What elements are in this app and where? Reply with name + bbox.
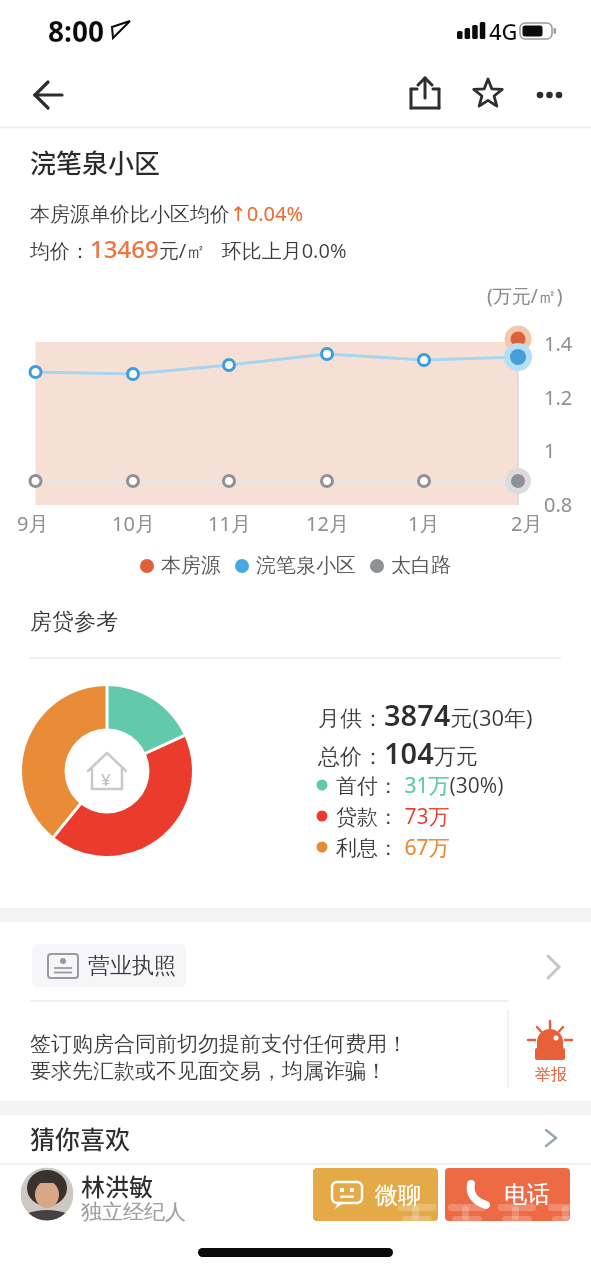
staticText: 猜你喜欢 bbox=[30, 1120, 131, 1156]
staticText: 利息： 67万 bbox=[336, 833, 450, 862]
staticText: 浣笔泉小区 bbox=[256, 553, 356, 578]
staticText: 9月 bbox=[17, 510, 49, 537]
staticText: 1月 bbox=[408, 510, 440, 537]
staticText: ¥ bbox=[101, 768, 111, 791]
staticText: 独立经纪人 bbox=[81, 1199, 186, 1225]
staticText: 8:00 bbox=[48, 12, 104, 50]
staticText: 太白路 bbox=[391, 553, 451, 578]
staticText: (万元/㎡) bbox=[487, 283, 563, 309]
staticText: 举报 bbox=[535, 1065, 567, 1085]
staticText: 要求先汇款或不见面交易，均属诈骗！ bbox=[30, 1058, 387, 1084]
staticText: 房贷参考 bbox=[30, 608, 118, 636]
staticText: 微聊 bbox=[375, 1181, 421, 1210]
button[interactable]: 电话 bbox=[445, 1168, 570, 1221]
button[interactable] bbox=[32, 944, 186, 987]
staticText: 11月 bbox=[208, 510, 251, 537]
staticText: 2月 bbox=[511, 510, 543, 537]
staticText: 10月 bbox=[112, 510, 155, 537]
staticText: 贷款： 73万 bbox=[336, 802, 450, 831]
staticText: 4G bbox=[489, 16, 518, 46]
staticText: 首付： 31万(30%) bbox=[336, 771, 504, 800]
staticText: 林洪敏 bbox=[81, 1168, 153, 1203]
staticText: 均价：13469元/㎡ 环比上月0.0% bbox=[30, 232, 347, 265]
button[interactable] bbox=[520, 1012, 580, 1088]
staticText: 签订购房合同前切勿提前支付任何费用！ bbox=[30, 1031, 408, 1057]
staticText: 1.4 bbox=[544, 330, 573, 357]
button[interactable] bbox=[0, 1115, 591, 1163]
staticText: 电话 bbox=[504, 1180, 550, 1209]
staticText: 总价：104万元 bbox=[318, 733, 478, 772]
staticText: 营业执照 bbox=[88, 952, 176, 980]
button[interactable] bbox=[405, 72, 447, 114]
staticText: 月供：3874元(30年) bbox=[318, 695, 533, 734]
staticText: 12月 bbox=[306, 510, 349, 537]
button[interactable]: 微聊 bbox=[313, 1168, 438, 1221]
staticText: 浣笔泉小区 bbox=[30, 143, 161, 181]
button[interactable] bbox=[532, 72, 574, 114]
staticText: 本房源单价比小区均价↑0.04% bbox=[30, 200, 304, 227]
staticText: 本房源 bbox=[161, 553, 221, 578]
staticText: 0.8 bbox=[544, 491, 573, 518]
staticText: 1 bbox=[544, 437, 556, 464]
button[interactable] bbox=[20, 75, 70, 115]
button[interactable] bbox=[468, 72, 510, 114]
staticText: 1.2 bbox=[544, 384, 573, 411]
